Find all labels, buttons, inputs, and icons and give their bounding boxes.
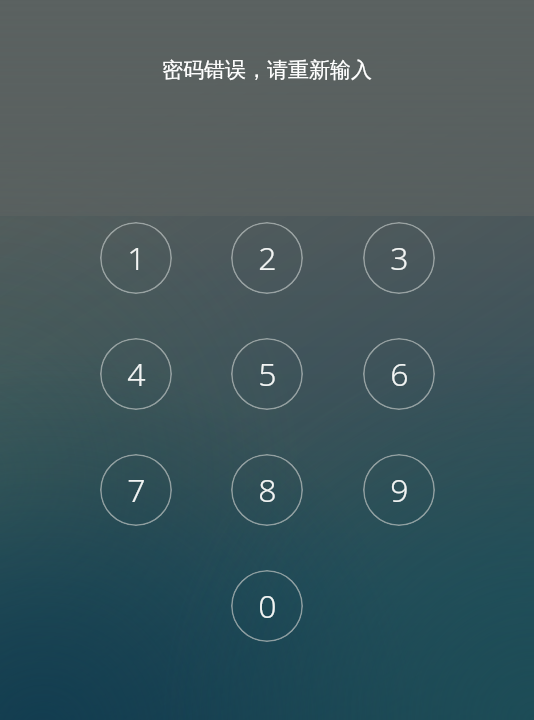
staticText: 5 (258, 352, 277, 396)
staticText: 0 (258, 584, 277, 628)
button[interactable]: 3 (363, 222, 435, 294)
staticText: 3 (390, 236, 409, 280)
button[interactable]: 0 (231, 570, 303, 642)
staticText: 8 (258, 468, 277, 512)
button[interactable]: 1 (100, 222, 172, 294)
staticText: 1 (127, 236, 146, 280)
button[interactable]: 9 (363, 454, 435, 526)
button[interactable]: 5 (231, 338, 303, 410)
staticText: 9 (390, 468, 409, 512)
button[interactable]: 6 (363, 338, 435, 410)
staticText: 4 (127, 352, 146, 396)
staticText: 密码错误，请重新输入 (0, 57, 534, 83)
button[interactable]: 2 (231, 222, 303, 294)
button[interactable]: 7 (100, 454, 172, 526)
staticText: 7 (127, 468, 146, 512)
staticText: 2 (258, 236, 277, 280)
button[interactable]: 4 (100, 338, 172, 410)
staticText: 6 (390, 352, 409, 396)
button[interactable]: 8 (231, 454, 303, 526)
